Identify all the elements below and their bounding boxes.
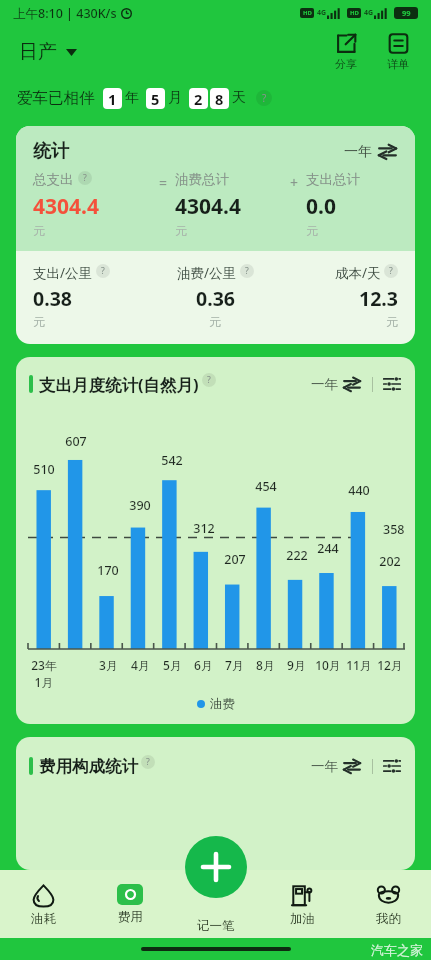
staticText: 4304.4 [175, 192, 241, 221]
staticText: 0.38 [33, 285, 72, 312]
staticText: ? [245, 265, 249, 277]
button[interactable]: 筛选 [382, 756, 402, 776]
staticText: 542 [161, 452, 183, 469]
staticText: 详单 [387, 57, 409, 71]
staticText: 一年 [311, 758, 338, 775]
staticText: 207 [224, 551, 246, 568]
staticText: ? [146, 756, 150, 768]
button[interactable]: 费用 [87, 880, 173, 929]
staticText: 总支出 [33, 171, 74, 188]
button[interactable]: 加油 [259, 880, 345, 931]
staticText: 元 [209, 314, 221, 329]
staticText: 6月 [194, 657, 213, 673]
staticText: 月 [168, 89, 182, 107]
staticText: 支出月度统计(自然月) [39, 373, 199, 396]
button[interactable]: 我的 [345, 880, 431, 931]
button[interactable]: 分享 [329, 33, 363, 71]
staticText: 4G [317, 8, 327, 18]
staticText: 11月 [346, 657, 372, 673]
staticText: 9月 [287, 657, 306, 673]
staticText: 5 [151, 89, 160, 109]
staticText: 支出/公里 [33, 264, 93, 282]
button[interactable]: 油耗 [0, 880, 87, 931]
staticText: 244 [317, 540, 339, 557]
staticText: 440 [348, 482, 370, 499]
staticText: 费用 [118, 909, 143, 925]
button[interactable]: 日产 [17, 34, 79, 70]
staticText: 3月 [99, 657, 118, 673]
staticText: 一年 [311, 376, 338, 393]
staticText: 607 [65, 433, 87, 450]
staticText: 170 [97, 562, 119, 579]
staticText: ? [207, 374, 211, 386]
button[interactable]: 记一笔 [185, 836, 247, 898]
staticText: + [290, 173, 299, 192]
button[interactable]: 一年 [340, 138, 401, 165]
staticText: 312 [193, 520, 215, 537]
staticText: 上午8:10 | 430K/s [13, 5, 117, 22]
staticText: 油费 [210, 696, 235, 712]
staticText: 8月 [256, 657, 275, 673]
staticText: ? [101, 265, 105, 277]
staticText: 元 [306, 223, 318, 238]
staticText: 10月 [315, 657, 341, 673]
staticText: 222 [286, 547, 308, 564]
staticText: 23年1月 [28, 657, 60, 690]
staticText: 0.36 [196, 285, 235, 312]
staticText: 4304.4 [33, 192, 99, 221]
staticText: 成本/天 [335, 264, 381, 282]
staticText: 记一笔 [197, 918, 235, 934]
button[interactable]: 一年 [309, 753, 363, 779]
staticText: 天 [232, 89, 246, 107]
staticText: 4G [364, 8, 374, 18]
staticText: 元 [386, 314, 398, 329]
staticText: 元 [175, 223, 187, 238]
staticText: 202 [379, 553, 401, 570]
staticText: 99 [402, 8, 411, 18]
staticText: 日产 [19, 40, 57, 64]
staticText: HD [350, 9, 359, 17]
staticText: 统计 [33, 140, 69, 163]
staticText: 费用构成统计 [39, 756, 138, 777]
button[interactable]: 详单 [381, 33, 415, 71]
staticText: 2 [194, 89, 203, 109]
staticText: 年 [125, 89, 139, 107]
staticText: 0.0 [306, 192, 336, 221]
staticText: 油费总计 [175, 171, 229, 188]
staticText: 7月 [225, 657, 244, 673]
staticText: 元 [33, 314, 45, 329]
staticText: ? [83, 172, 87, 184]
staticText: 510 [33, 461, 55, 478]
button[interactable]: 一年 [309, 371, 363, 397]
staticText: ? [389, 265, 393, 277]
staticText: 支出总计 [306, 171, 360, 188]
staticText: 加油 [290, 911, 315, 927]
staticText: 390 [129, 497, 151, 514]
staticText: 5月 [163, 657, 182, 673]
staticText: 油耗 [31, 911, 56, 927]
staticText: HD [303, 9, 312, 17]
staticText: 汽车之家 [371, 942, 423, 958]
staticText: 12月 [377, 657, 403, 673]
staticText: 油费/公里 [177, 264, 237, 282]
staticText: 一年 [344, 143, 372, 161]
button[interactable]: 筛选 [382, 374, 402, 394]
staticText: 爱车已相伴 [17, 88, 95, 108]
staticText: 我的 [376, 911, 401, 927]
staticText: 454 [255, 478, 277, 495]
staticText: = [159, 173, 168, 192]
staticText: 8 [215, 89, 224, 109]
staticText: 12.3 [359, 285, 398, 312]
staticText: 1 [108, 89, 117, 109]
staticText: 元 [33, 223, 45, 238]
staticText: 分享 [335, 57, 357, 71]
staticText: 358 [383, 521, 405, 538]
staticText: 4月 [131, 657, 150, 673]
staticText: ? [262, 91, 267, 105]
